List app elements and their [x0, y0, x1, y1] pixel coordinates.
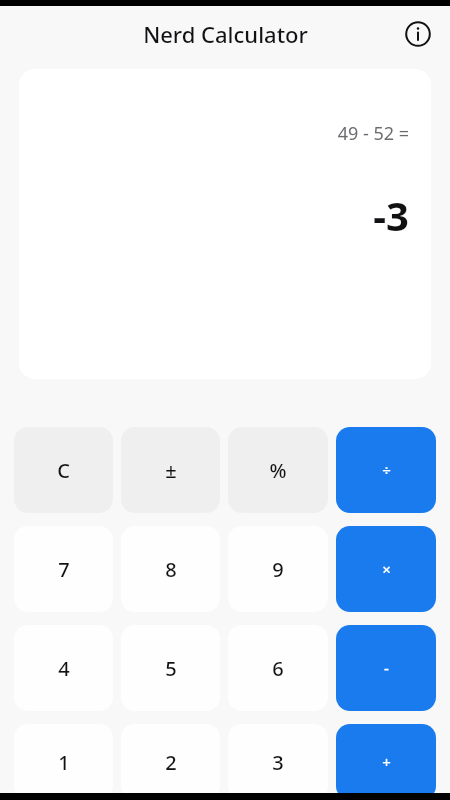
staticText: 3 — [272, 749, 284, 776]
button[interactable]: Info — [396, 12, 440, 56]
staticText: 5 — [165, 655, 177, 682]
button[interactable]: 6 — [228, 625, 328, 711]
staticText: - — [384, 658, 389, 678]
button[interactable]: 5 — [121, 625, 220, 711]
staticText: ÷ — [382, 460, 391, 480]
button[interactable]: ± — [121, 427, 220, 513]
button[interactable]: ÷ — [336, 427, 436, 513]
button[interactable]: 8 — [121, 526, 220, 612]
button[interactable]: 9 — [228, 526, 328, 612]
button[interactable]: 2 — [121, 724, 220, 800]
staticText: 4 — [58, 655, 70, 682]
button[interactable]: × — [336, 526, 436, 612]
button[interactable]: C — [14, 427, 113, 513]
button[interactable]: 4 — [14, 625, 113, 711]
staticText: 8 — [165, 556, 177, 583]
button[interactable]: 7 — [14, 526, 113, 612]
button[interactable]: + — [336, 724, 436, 800]
staticText: 7 — [58, 556, 70, 583]
button[interactable]: 3 — [228, 724, 328, 800]
staticText: 6 — [272, 655, 284, 682]
button[interactable]: - — [336, 625, 436, 711]
staticText: ± — [165, 457, 177, 484]
staticText: 49 - 52 = — [337, 121, 409, 146]
button[interactable]: % — [228, 427, 328, 513]
staticText: 1 — [58, 749, 70, 776]
staticText: Nerd Calculator — [143, 19, 308, 49]
staticText: × — [382, 559, 391, 579]
staticText: % — [269, 457, 287, 484]
button[interactable]: 1 — [14, 724, 113, 800]
staticText: + — [382, 752, 391, 772]
staticText: C — [57, 457, 70, 484]
button[interactable]: 49 - 52 = — [19, 69, 431, 379]
staticText: -3 — [373, 188, 409, 242]
staticText: 9 — [272, 556, 284, 583]
staticText: 2 — [165, 749, 177, 776]
